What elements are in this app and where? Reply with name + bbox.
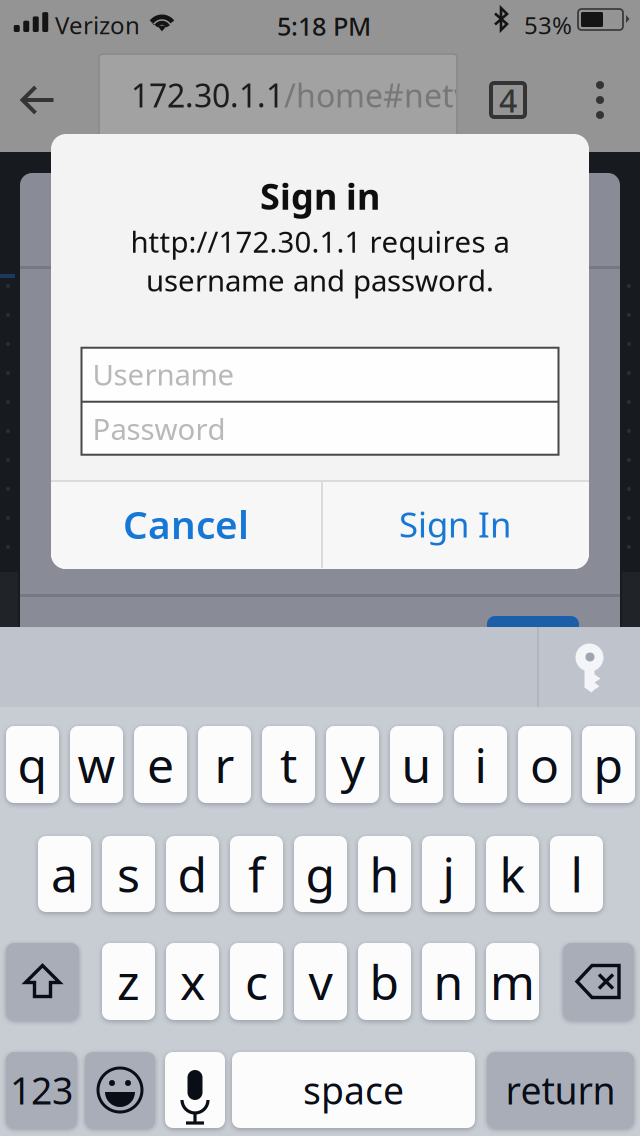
staticText: v [308, 950, 332, 1013]
staticText: 5:18 PM [277, 9, 371, 43]
button[interactable]: a [38, 836, 91, 912]
button[interactable]: e [134, 726, 187, 803]
staticText: Username [92, 355, 234, 394]
staticText: Password [92, 409, 225, 448]
button[interactable]: s [102, 836, 155, 912]
button[interactable]: Sign In [321, 480, 589, 568]
staticText: h [369, 842, 399, 906]
button[interactable]: 172.30.1.1 [99, 54, 457, 152]
staticText: space [303, 1065, 404, 1115]
staticText: b [369, 950, 399, 1013]
staticText: t [280, 733, 297, 796]
button[interactable]: 123 [6, 1052, 77, 1128]
staticText: 123 [10, 1065, 73, 1115]
staticText: Sign In [399, 501, 511, 547]
staticText: a [51, 842, 78, 906]
staticText: q [17, 733, 47, 796]
staticText: g [305, 842, 335, 906]
button[interactable]: v [294, 943, 347, 1020]
staticText: u [401, 733, 431, 796]
button[interactable]: Delete [563, 943, 634, 1020]
button[interactable]: Tabs [474, 48, 542, 152]
staticText: c [245, 950, 268, 1013]
button[interactable]: j [422, 836, 475, 912]
button[interactable]: n [422, 943, 475, 1020]
staticText: r [214, 733, 234, 796]
staticText: p [593, 733, 623, 796]
button[interactable]: d [166, 836, 219, 912]
button[interactable]: u [390, 726, 443, 803]
staticText: l [570, 842, 582, 906]
button[interactable]: x [166, 943, 219, 1020]
button[interactable]: return [487, 1052, 634, 1128]
staticText: s [117, 842, 140, 906]
staticText: Sign in [260, 172, 380, 220]
staticText: k [499, 842, 525, 906]
staticText: e [147, 733, 174, 796]
button[interactable]: Dictate [165, 1052, 225, 1128]
button[interactable]: t [262, 726, 315, 803]
button[interactable]: b [358, 943, 411, 1020]
staticText: i [474, 733, 486, 796]
staticText: z [117, 950, 140, 1013]
staticText: 4 [499, 79, 517, 121]
staticText: 53% [524, 9, 572, 41]
staticText: return [505, 1065, 615, 1115]
staticText: j [442, 842, 454, 906]
staticText: username and password. [146, 261, 494, 300]
staticText: http://172.30.1.1 requires a [130, 222, 509, 261]
staticText: Verizon [55, 9, 140, 41]
button[interactable]: f [230, 836, 283, 912]
button[interactable]: i [454, 726, 507, 803]
button[interactable]: c [230, 943, 283, 1020]
button[interactable]: z [102, 943, 155, 1020]
button[interactable]: Shift [6, 943, 79, 1020]
staticText: f [248, 842, 265, 906]
button[interactable]: More options [569, 48, 631, 152]
button[interactable]: Passwords [539, 628, 640, 708]
button[interactable]: g [294, 836, 347, 912]
staticText: d [177, 842, 207, 906]
staticText: y [340, 733, 364, 796]
button[interactable]: Emoji [85, 1052, 155, 1128]
staticText: w [77, 733, 115, 796]
button[interactable]: Cancel [51, 480, 321, 568]
button[interactable]: k [486, 836, 539, 912]
staticText: /home#netw [284, 74, 479, 116]
staticText: Cancel [123, 498, 249, 550]
staticText: n [433, 950, 463, 1013]
button[interactable]: o [518, 726, 571, 803]
button[interactable]: q [6, 726, 59, 803]
staticText: o [530, 733, 559, 796]
button[interactable]: r [198, 726, 251, 803]
button[interactable]: m [486, 943, 539, 1020]
staticText: m [490, 950, 535, 1013]
button[interactable]: p [582, 726, 635, 803]
button[interactable]: space [232, 1052, 475, 1128]
button[interactable]: h [358, 836, 411, 912]
staticText: 172.30.1.1 [131, 74, 284, 116]
button[interactable]: Back [0, 48, 76, 152]
button[interactable]: w [70, 726, 123, 803]
button[interactable]: l [550, 836, 603, 912]
button[interactable]: y [326, 726, 379, 803]
staticText: x [180, 950, 205, 1013]
